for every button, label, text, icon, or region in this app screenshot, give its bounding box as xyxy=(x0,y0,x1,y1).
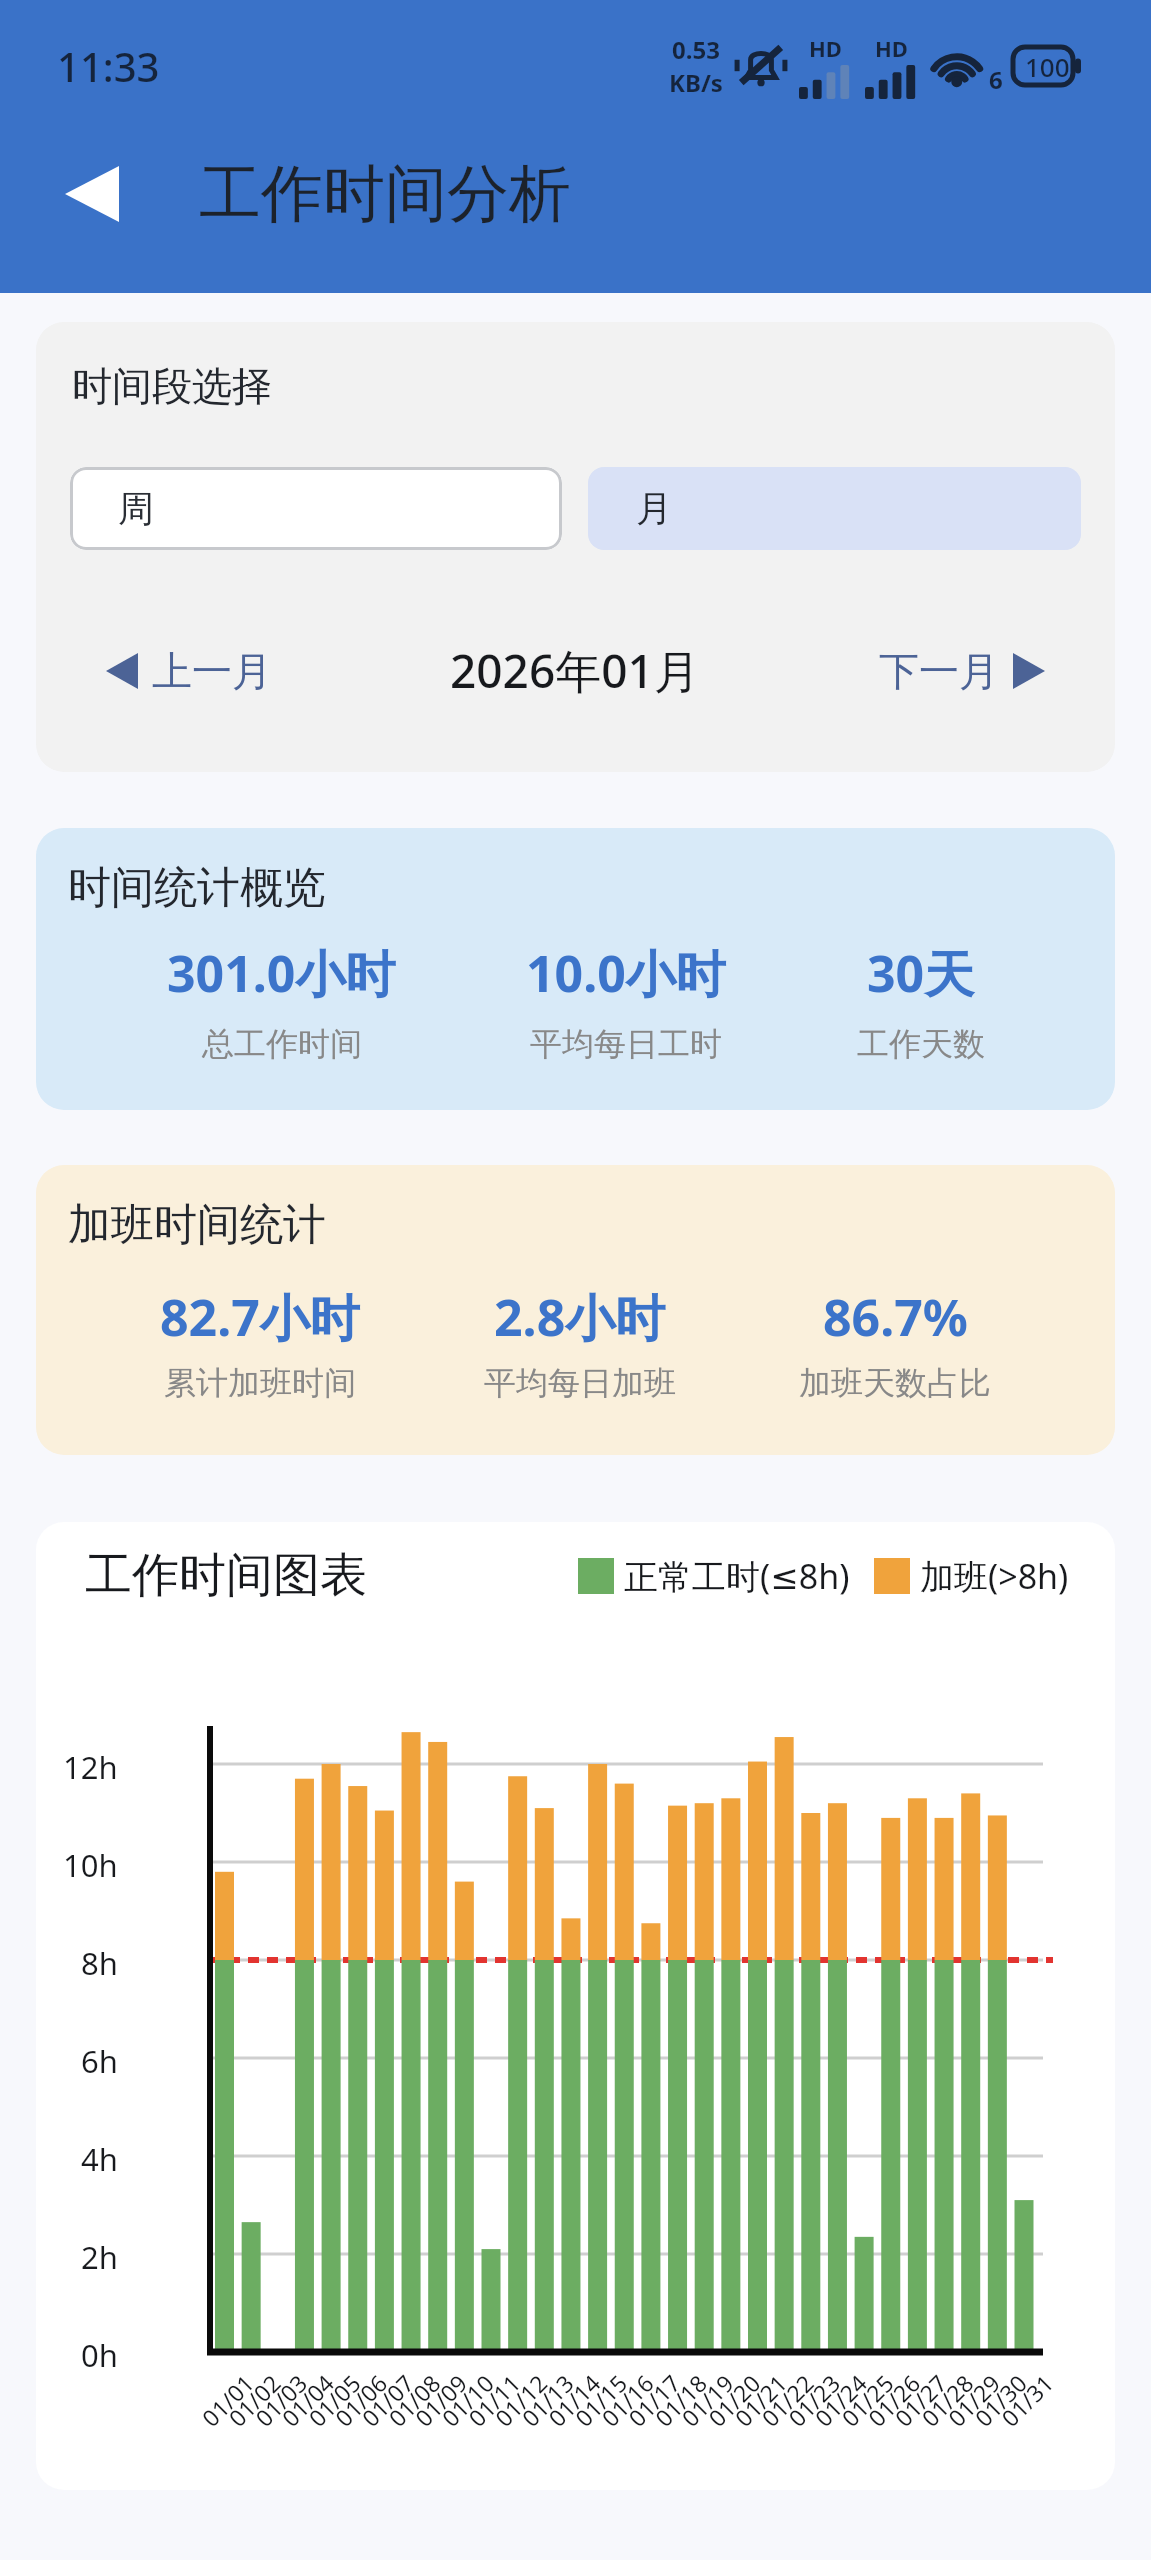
staticText: 上一月 xyxy=(152,646,272,696)
button[interactable]: 下一月 xyxy=(879,646,1045,696)
staticText: 301.0小时 xyxy=(167,939,396,1007)
staticText: 10.0小时 xyxy=(526,939,726,1007)
staticText: 正常工时(≤8h) xyxy=(624,1553,850,1599)
staticText: 86.7% xyxy=(823,1283,968,1351)
staticText: 累计加班时间 xyxy=(164,1363,356,1403)
button[interactable]: 月 xyxy=(588,467,1081,550)
button[interactable]: 周 xyxy=(70,467,562,550)
staticText: 加班天数占比 xyxy=(799,1363,991,1403)
staticText: 下一月 xyxy=(879,646,999,696)
staticText: 2026年01月 xyxy=(450,639,700,702)
staticText: 加班时间统计 xyxy=(68,1198,326,1252)
staticText: 82.7小时 xyxy=(160,1283,360,1351)
staticText: 0.53 xyxy=(672,33,720,66)
staticText: 加班(>8h) xyxy=(920,1553,1069,1599)
staticText: 6 xyxy=(989,63,1003,96)
staticText: 时间统计概览 xyxy=(68,861,326,915)
staticText: 周 xyxy=(118,486,154,531)
staticText: 平均每日加班 xyxy=(484,1363,676,1403)
staticText: HD xyxy=(809,33,842,63)
staticText: 总工作时间 xyxy=(202,1024,362,1064)
staticText: 时间段选择 xyxy=(72,361,272,411)
button[interactable]: 上一月 xyxy=(106,646,272,696)
staticText: KB/s xyxy=(669,66,723,99)
staticText: 工作天数 xyxy=(857,1024,985,1064)
button[interactable] xyxy=(65,166,119,222)
staticText: 月 xyxy=(636,486,672,531)
staticText: 2.8小时 xyxy=(494,1283,666,1351)
staticText: 工作时间分析 xyxy=(199,155,571,233)
staticText: 11:33 xyxy=(57,39,160,93)
staticText: 平均每日工时 xyxy=(530,1024,722,1064)
staticText: HD xyxy=(875,33,908,63)
staticText: 30天 xyxy=(867,939,975,1007)
staticText: 工作时间图表 xyxy=(85,1546,367,1605)
staticText: 100 xyxy=(1025,49,1070,84)
